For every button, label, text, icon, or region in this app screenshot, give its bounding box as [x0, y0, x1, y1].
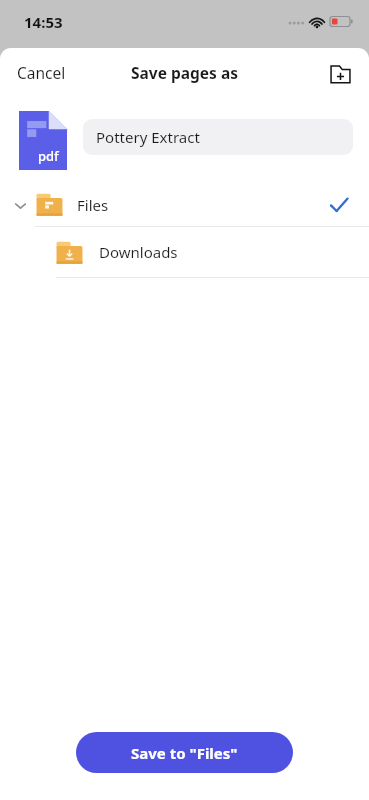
button[interactable]: New folder [325, 58, 355, 88]
button[interactable]: Files [0, 183, 369, 226]
button[interactable]: Downloads [0, 227, 369, 277]
button[interactable]: Pottery Extract [83, 119, 353, 155]
button[interactable]: Cancel [8, 56, 75, 89]
staticText: Save pages as [131, 62, 238, 83]
button[interactable]: Save to "Files" [76, 732, 293, 773]
staticText: 14:53 [24, 12, 63, 32]
staticText: Files [77, 195, 109, 215]
staticText: pdf [38, 147, 59, 165]
staticText: Save to "Files" [131, 743, 238, 763]
staticText: Cancel [17, 62, 66, 83]
staticText: Pottery Extract [96, 127, 200, 147]
staticText: Downloads [99, 242, 178, 262]
